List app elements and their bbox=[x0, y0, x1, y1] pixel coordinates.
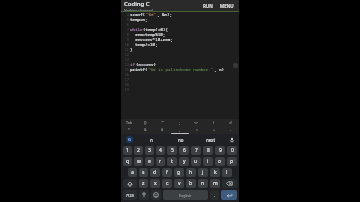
staticText: m bbox=[213, 180, 218, 187]
button[interactable]: x bbox=[150, 179, 160, 188]
staticText: + bbox=[213, 127, 215, 132]
staticText: x bbox=[154, 180, 157, 187]
button[interactable]: k bbox=[210, 168, 220, 177]
button[interactable]: 7 bbox=[191, 146, 201, 155]
button[interactable]: l bbox=[222, 168, 232, 177]
staticText: # bbox=[161, 127, 164, 132]
button[interactable]: {} bbox=[137, 119, 154, 126]
staticText: f bbox=[166, 169, 168, 176]
staticText: 4 bbox=[121, 12, 129, 17]
button[interactable]: u bbox=[191, 157, 201, 166]
staticText: no bbox=[178, 137, 184, 143]
button[interactable]: t bbox=[167, 157, 177, 166]
staticText: 17 bbox=[121, 77, 129, 82]
other: Scroll handle bbox=[233, 63, 238, 68]
staticText: 13 bbox=[121, 57, 129, 62]
button[interactable]: Shift bbox=[123, 179, 137, 188]
button[interactable]: c bbox=[162, 179, 172, 188]
staticText: h bbox=[189, 169, 193, 176]
staticText: z bbox=[142, 180, 145, 187]
button[interactable]: MENU bbox=[218, 3, 236, 9]
button[interactable]: d bbox=[150, 168, 160, 177]
button[interactable]: s bbox=[139, 168, 148, 177]
button[interactable]: . bbox=[210, 190, 219, 200]
button[interactable]: f bbox=[162, 168, 172, 177]
staticText: (n==rev) bbox=[136, 62, 157, 67]
button[interactable]: , bbox=[171, 126, 188, 132]
button[interactable]: = bbox=[188, 126, 205, 132]
button[interactable]: 6 bbox=[179, 146, 189, 155]
staticText: t bbox=[171, 158, 173, 165]
button[interactable]: j bbox=[198, 168, 208, 177]
button[interactable]: * bbox=[121, 126, 137, 132]
staticText: 6 bbox=[183, 147, 186, 154]
staticText: v bbox=[178, 180, 181, 187]
staticText: n bbox=[150, 137, 153, 143]
button[interactable]: 4 bbox=[156, 146, 165, 155]
button[interactable]: 1 bbox=[123, 146, 132, 155]
button[interactable]: ?123 bbox=[123, 190, 137, 200]
button[interactable]: Emoji bbox=[151, 190, 161, 200]
button[interactable]: w bbox=[134, 157, 143, 166]
staticText: English bbox=[179, 193, 192, 198]
button[interactable]: <> bbox=[188, 119, 205, 126]
button[interactable]: 8 bbox=[203, 146, 213, 155]
staticText: c bbox=[166, 180, 169, 187]
staticText: 7 bbox=[195, 147, 198, 154]
button[interactable]: Backspace bbox=[222, 179, 237, 188]
button[interactable]: e bbox=[145, 157, 154, 166]
button[interactable]: b bbox=[186, 179, 196, 188]
button[interactable]: r bbox=[156, 157, 165, 166]
button[interactable]: 3 bbox=[145, 146, 154, 155]
button[interactable]: 5 bbox=[167, 146, 177, 155]
staticText: , n) bbox=[214, 67, 225, 72]
button[interactable]: o bbox=[215, 157, 225, 166]
button[interactable]: 0 bbox=[227, 146, 237, 155]
button[interactable]: ↺ bbox=[222, 119, 239, 126]
staticText: 12 bbox=[121, 52, 129, 57]
button[interactable]: ; bbox=[171, 119, 188, 126]
button[interactable]: h bbox=[186, 168, 196, 177]
button[interactable]: English bbox=[163, 190, 208, 200]
staticText: k bbox=[214, 169, 217, 176]
button[interactable]: & bbox=[137, 126, 154, 132]
button[interactable]: n bbox=[198, 179, 208, 188]
button[interactable]: + bbox=[205, 126, 222, 132]
button[interactable]: Settings bbox=[139, 190, 149, 200]
button[interactable]: q bbox=[123, 157, 132, 166]
staticText: 0 bbox=[231, 147, 234, 154]
button[interactable]: i bbox=[203, 157, 213, 166]
button[interactable]: Voice input bbox=[226, 134, 238, 145]
staticText: {} bbox=[144, 120, 147, 125]
button[interactable]: n bbox=[136, 134, 166, 145]
staticText: 11 bbox=[121, 47, 129, 52]
staticText: scanf( bbox=[130, 12, 146, 17]
button[interactable]: m bbox=[210, 179, 220, 188]
button[interactable]: - bbox=[222, 126, 239, 132]
staticText: 10 bbox=[121, 42, 129, 47]
staticText: rev=rev*10+rem; bbox=[130, 37, 173, 42]
staticText: (temp!=0){ bbox=[143, 27, 169, 32]
button[interactable]: Google bbox=[122, 134, 136, 145]
button[interactable]: # bbox=[154, 126, 171, 132]
staticText: 7 bbox=[121, 27, 129, 32]
staticText: q bbox=[126, 158, 130, 165]
button[interactable]: a bbox=[128, 168, 137, 177]
button[interactable]: Tab bbox=[121, 119, 137, 126]
button[interactable]: Enter bbox=[221, 190, 237, 200]
button[interactable]: v bbox=[174, 179, 184, 188]
staticText: e bbox=[148, 158, 151, 165]
button[interactable]: p bbox=[227, 157, 237, 166]
button[interactable]: 9 bbox=[215, 146, 225, 155]
staticText: temp=n; bbox=[130, 17, 148, 22]
button[interactable]: 2 bbox=[134, 146, 143, 155]
button[interactable]: RUN bbox=[201, 3, 215, 9]
button[interactable]: no bbox=[166, 134, 196, 145]
button[interactable]: z bbox=[139, 179, 148, 188]
button[interactable]: next bbox=[196, 134, 226, 145]
button[interactable]: g bbox=[174, 168, 184, 177]
button[interactable]: "" bbox=[154, 119, 171, 126]
button[interactable]: y bbox=[179, 157, 189, 166]
staticText: "%d" bbox=[146, 12, 157, 17]
button[interactable]: ( bbox=[205, 119, 222, 126]
